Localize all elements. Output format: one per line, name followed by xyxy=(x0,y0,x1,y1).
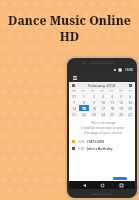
button[interactable]: 3 xyxy=(99,93,108,99)
staticText: 26 xyxy=(119,112,124,117)
button[interactable]: 9 xyxy=(89,99,99,105)
staticText: 31 xyxy=(72,94,77,99)
staticText: 12:30 xyxy=(125,68,133,72)
button[interactable]: 23 xyxy=(89,111,99,117)
button[interactable]: 16 xyxy=(89,105,99,111)
button[interactable]: 19 xyxy=(117,105,126,111)
staticText: the page of your choice xyxy=(84,130,122,135)
button[interactable]: Next month xyxy=(128,83,133,88)
button[interactable]: 27 xyxy=(126,111,135,117)
button[interactable]: Home xyxy=(98,181,106,189)
staticText: 21 xyxy=(72,112,77,117)
staticText: 22 xyxy=(82,112,87,117)
button[interactable]: Previous month xyxy=(71,83,76,88)
button[interactable]: 4 xyxy=(108,93,117,99)
staticText: This is an image xyxy=(90,120,116,125)
staticText: John's Birthday xyxy=(87,146,113,151)
button[interactable]: 18 xyxy=(108,105,117,111)
staticText: 4 xyxy=(111,94,114,99)
staticText: 6 xyxy=(129,94,132,99)
button[interactable]: 31 xyxy=(69,93,79,99)
button[interactable]: 11 xyxy=(108,99,117,105)
button[interactable]: 20 xyxy=(126,105,135,111)
staticText: CMT:LEXN xyxy=(87,139,105,144)
staticText: 5 xyxy=(120,94,123,99)
staticText: 23 xyxy=(92,112,97,117)
button[interactable]: 15 xyxy=(79,105,89,111)
staticText: 3 xyxy=(102,94,105,99)
button[interactable]: 12 xyxy=(117,99,126,105)
staticText: Install/preview app to view xyxy=(81,125,124,130)
button[interactable]: 24 xyxy=(99,111,108,117)
button[interactable]: 25 xyxy=(108,111,117,117)
staticText: 9 xyxy=(93,100,96,105)
staticText: 1 xyxy=(83,94,86,99)
staticText: 18 xyxy=(110,106,115,111)
staticText: 10 xyxy=(101,100,106,105)
staticText: 17 xyxy=(101,106,106,111)
button[interactable]: 22 xyxy=(79,111,89,117)
button[interactable]: Recent apps xyxy=(117,181,125,189)
button[interactable]: 8 xyxy=(79,99,89,105)
staticText: 27 xyxy=(128,112,133,117)
button[interactable]: Back xyxy=(80,181,88,189)
staticText: 8 xyxy=(83,100,86,105)
button[interactable]: 9:00 xyxy=(69,145,135,152)
staticText: 15 xyxy=(82,106,87,111)
button[interactable]: 1 xyxy=(79,93,89,99)
button[interactable]: 10 xyxy=(99,99,108,105)
staticText: 13 xyxy=(128,100,133,105)
button[interactable]: 26 xyxy=(117,111,126,117)
button[interactable]: 7 xyxy=(69,99,79,105)
staticText: 14 xyxy=(72,106,77,111)
staticText: 24 xyxy=(101,112,106,117)
staticText: 2 xyxy=(93,94,96,99)
button[interactable]: 21 xyxy=(69,111,79,117)
button[interactable]: 13 xyxy=(126,99,135,105)
button[interactable]: This is an image xyxy=(74,119,130,136)
staticText: 9:00 xyxy=(78,140,85,144)
other: Menu xyxy=(72,75,77,80)
staticText: 20 xyxy=(128,106,133,111)
staticText: February 2018 xyxy=(88,83,116,88)
staticText: 25 xyxy=(110,112,115,117)
staticText: 12 xyxy=(119,100,124,105)
button[interactable]: 14 xyxy=(69,105,79,111)
button[interactable]: Confirm xyxy=(113,177,127,180)
button[interactable]: 2 xyxy=(89,93,99,99)
staticText: 9:00 xyxy=(78,147,85,151)
button[interactable]: 9:00 xyxy=(69,138,135,145)
button[interactable]: Menu xyxy=(69,73,135,82)
button[interactable]: 6 xyxy=(126,93,135,99)
button[interactable]: 17 xyxy=(99,105,108,111)
staticText: 19 xyxy=(119,106,124,111)
staticText: 11 xyxy=(110,100,115,105)
staticText: Dance Music Online HD xyxy=(0,12,139,44)
button[interactable]: Dance Music Online HD xyxy=(0,12,139,44)
staticText: 16 xyxy=(92,106,97,111)
button[interactable]: 5 xyxy=(117,93,126,99)
staticText: 7 xyxy=(73,100,76,105)
